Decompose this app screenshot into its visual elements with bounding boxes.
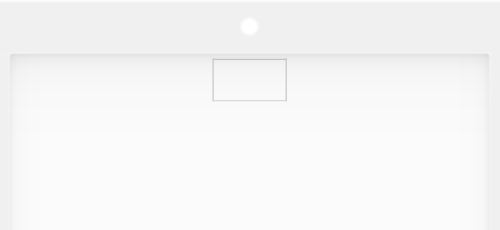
button[interactable]: Card — [212, 58, 287, 102]
button[interactable]: Profile — [241, 18, 259, 36]
